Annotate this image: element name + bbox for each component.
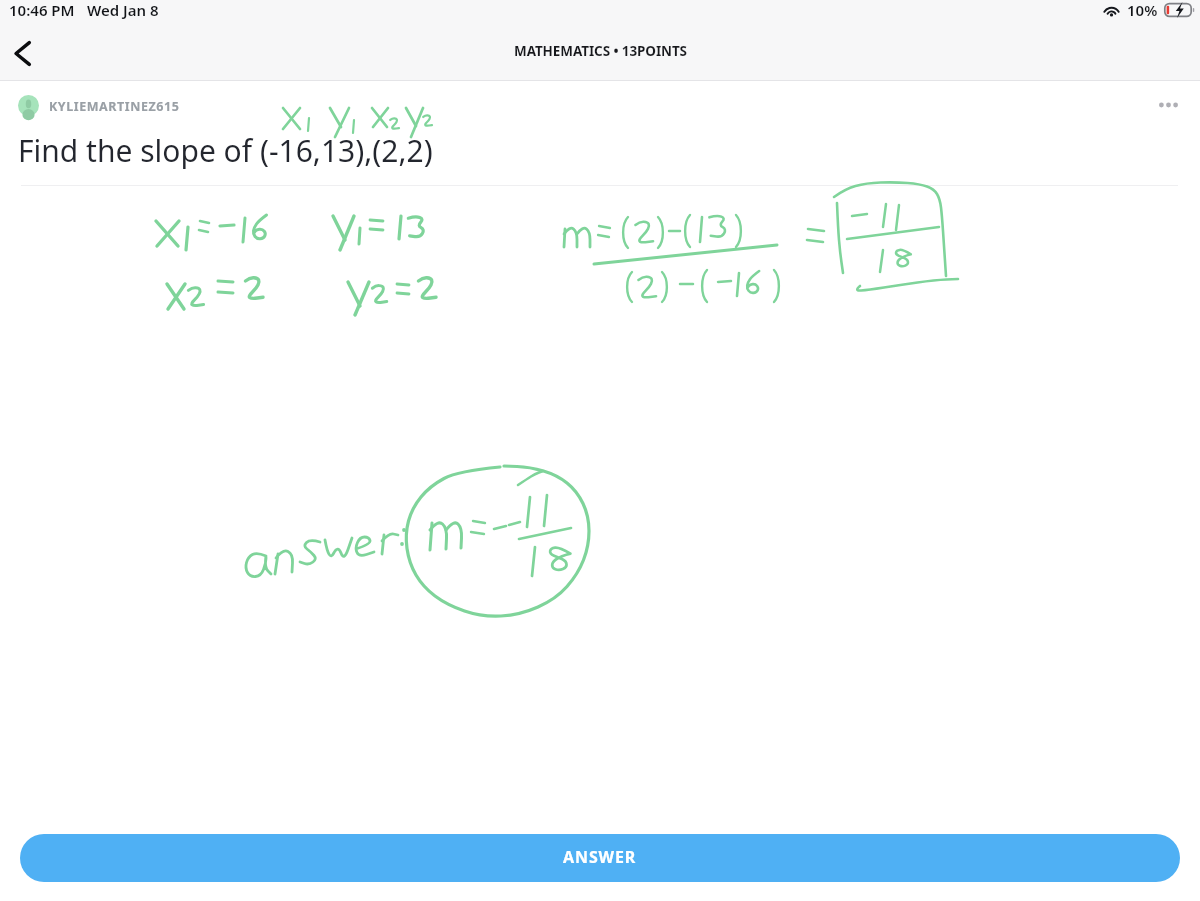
staticText: KYLIEMARTINEZ615 — [49, 98, 180, 115]
staticText: 10% — [1127, 0, 1158, 20]
button[interactable]: More options — [1148, 85, 1188, 125]
button[interactable]: Back — [0, 31, 44, 75]
staticText: ANSWER — [563, 846, 637, 868]
staticText: Find the slope of (-16,13),(2,2) — [18, 130, 433, 171]
staticText: Wed Jan 8 — [87, 0, 159, 20]
staticText: MATHEMATICS • 13POINTS — [514, 42, 687, 60]
staticText: 10:46 PM — [9, 0, 75, 20]
button[interactable]: ANSWER — [20, 834, 1180, 882]
